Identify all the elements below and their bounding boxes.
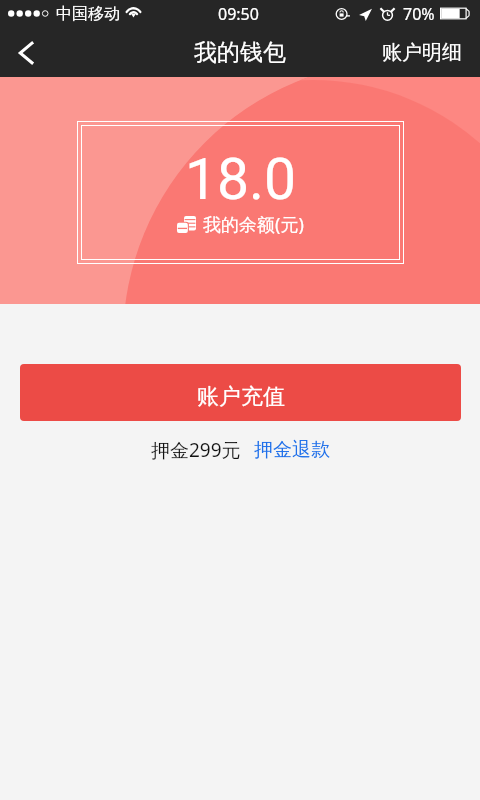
staticText: 账户明细	[382, 40, 462, 65]
staticText: 09:50	[218, 3, 259, 25]
button[interactable]: 押金退款	[254, 438, 330, 462]
button[interactable]: Back	[0, 28, 52, 77]
staticText: 押金退款	[254, 438, 330, 462]
staticText: 账户充值	[197, 383, 285, 411]
button[interactable]: 账户明细	[364, 28, 480, 77]
staticText: 我的钱包	[194, 38, 286, 67]
staticText: 中国移动	[56, 4, 120, 24]
staticText: 18.0	[185, 146, 297, 213]
staticText: 我的余额(元)	[203, 212, 304, 237]
staticText: 押金299元	[151, 437, 241, 463]
staticText: 70%	[403, 3, 435, 25]
button[interactable]: 账户充值	[20, 364, 461, 421]
